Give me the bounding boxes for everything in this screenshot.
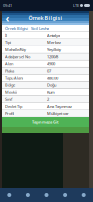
- staticText: Devlet Tip: [5, 104, 22, 109]
- staticText: 2: [47, 97, 49, 102]
- staticText: Ana Taşınmaz: [47, 104, 72, 109]
- button[interactable]: Harita: [0, 188, 19, 202]
- button[interactable]: Back: [3, 11, 12, 24]
- staticText: 07: [47, 68, 51, 73]
- button[interactable]: Kayıt: [56, 188, 74, 202]
- staticText: ‹: [5, 11, 9, 25]
- staticText: 480.00: [47, 75, 58, 81]
- staticText: LTE: [73, 3, 79, 8]
- staticText: Örnek Bilgisi: [5, 26, 28, 31]
- staticText: Sınıf: [5, 97, 12, 102]
- staticText: Sicil Levha: [31, 26, 49, 31]
- staticText: 09:41: [3, 3, 12, 8]
- button[interactable]: Liste: [19, 188, 37, 202]
- staticText: Mahalle/Köy: [5, 47, 26, 52]
- staticText: Mülkiyet var: [47, 111, 69, 116]
- staticText: Profil: [5, 111, 14, 116]
- staticText: Tapu Alanı: [5, 75, 23, 81]
- staticText: Mevkii: [5, 89, 17, 95]
- button[interactable]: Taşınmaza Git: [2, 117, 89, 127]
- staticText: Plaka: [5, 68, 14, 73]
- staticText: 1200/8: [47, 54, 58, 59]
- staticText: Kum: [47, 89, 55, 95]
- staticText: Örnek Bilgisi: [28, 14, 62, 22]
- button[interactable]: Ara: [37, 188, 56, 202]
- staticText: Antalya: [47, 33, 60, 38]
- staticText: Merkez: [47, 40, 61, 45]
- staticText: Ada/parsel No: [5, 54, 30, 59]
- button[interactable]: Diğer: [74, 188, 93, 202]
- staticText: 4900: [47, 61, 55, 66]
- staticText: Alan: [5, 61, 13, 66]
- staticText: Tipi: [5, 40, 11, 45]
- staticText: Doğu: [47, 82, 56, 88]
- staticText: Bölge: [5, 82, 15, 88]
- staticText: Taşınmaza Git: [32, 119, 59, 125]
- staticText: Yeşilköy: [47, 47, 61, 52]
- staticText: İl: [5, 33, 7, 38]
